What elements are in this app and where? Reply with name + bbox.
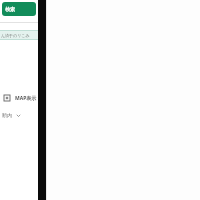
button[interactable]: 検索 (2, 2, 36, 16)
staticText: 検索 (5, 6, 15, 12)
button[interactable]: ん済于のリこみ (0, 31, 38, 39)
button[interactable]: MAP (0, 91, 38, 105)
button[interactable]: 順内 (0, 109, 38, 121)
staticText: MAP表示 (15, 95, 37, 102)
other: MAP (4, 95, 10, 101)
other: Expand (16, 113, 21, 118)
staticText: 順内 (2, 112, 12, 118)
staticText: ん済于のリこみ (1, 33, 30, 38)
